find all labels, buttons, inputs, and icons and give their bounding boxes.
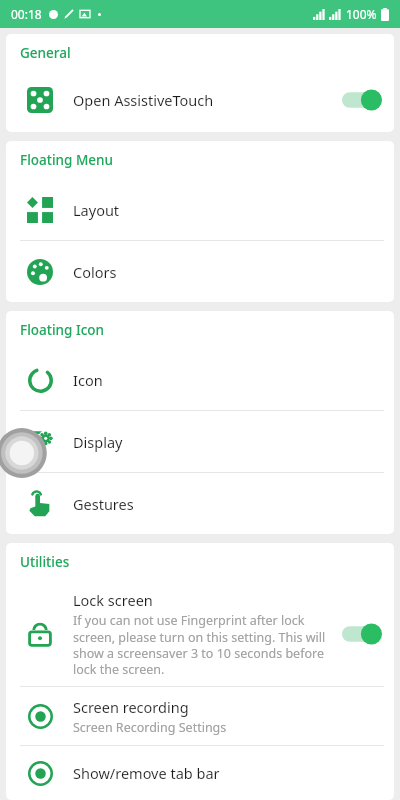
staticText: Display [73, 432, 123, 452]
staticText: Utilities [20, 553, 70, 571]
staticText: Lock screen [73, 590, 153, 610]
button[interactable]: Icon [6, 349, 394, 410]
staticText: 00:18 [11, 6, 42, 22]
button[interactable]: Lock screen [6, 581, 394, 686]
button[interactable]: Toggle [342, 623, 382, 645]
staticText: Floating Icon [20, 321, 105, 339]
staticText: Colors [73, 262, 117, 282]
staticText: Screen Recording Settings [73, 719, 227, 736]
staticText: If you can not use Fingerprint after loc… [73, 612, 334, 677]
button[interactable]: Display [6, 411, 394, 472]
staticText: 100% [346, 6, 377, 22]
staticText: Gestures [73, 494, 134, 514]
button[interactable]: Show/remove tab bar [6, 746, 394, 800]
staticText: Screen recording [73, 697, 189, 717]
staticText: General [20, 44, 71, 62]
button[interactable]: Layout [6, 179, 394, 240]
button[interactable]: Toggle [342, 89, 382, 111]
button[interactable]: AssistiveTouch floating button [0, 427, 52, 479]
staticText: Floating Menu [20, 151, 113, 169]
button[interactable]: Colors [6, 241, 394, 302]
staticText: Show/remove tab bar [73, 763, 220, 783]
button[interactable]: Screen recording [6, 687, 394, 745]
staticText: Icon [73, 370, 103, 390]
staticText: Open AssistiveTouch [73, 90, 214, 110]
staticText: Layout [73, 200, 120, 220]
button[interactable]: Gestures [6, 473, 394, 534]
button[interactable]: Open AssistiveTouch [6, 72, 394, 128]
